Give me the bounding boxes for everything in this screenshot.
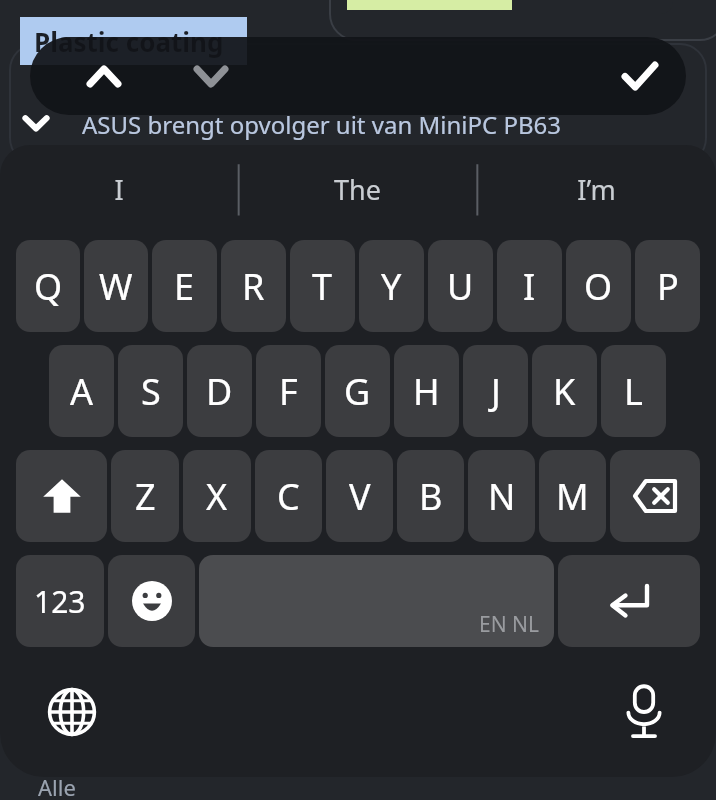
staticText: U [447,262,474,311]
staticText: N [488,472,516,521]
staticText: P [657,262,679,311]
button[interactable]: C [255,450,322,542]
button[interactable]: R [221,240,286,332]
button[interactable]: Space [199,555,554,647]
staticText: Y [381,262,402,311]
button[interactable]: Y [359,240,424,332]
button[interactable]: O [566,240,631,332]
button[interactable]: L [601,345,666,437]
staticText: Alle [38,772,76,800]
staticText: E [174,262,195,311]
staticText: I [114,171,124,208]
staticText: I [523,262,536,311]
button[interactable]: Shift [16,450,107,542]
button[interactable]: I’m [477,145,716,233]
button[interactable]: S [118,345,183,437]
staticText: W [99,262,133,311]
button[interactable]: T [290,240,355,332]
staticText: G [344,367,371,416]
button[interactable]: D [187,345,252,437]
button[interactable]: Next [185,50,237,102]
staticText: T [312,262,333,311]
button[interactable]: M [539,450,606,542]
staticText: 123 [34,581,86,622]
button[interactable]: G [325,345,390,437]
button[interactable]: B [397,450,464,542]
button[interactable]: 123 [16,555,104,647]
staticText: D [206,367,233,416]
button[interactable]: K [532,345,597,437]
button[interactable]: U [428,240,493,332]
staticText: ASUS brengt opvolger uit van MiniPC PB63 [82,108,561,141]
staticText: O [584,262,613,311]
button[interactable]: The [238,145,477,233]
button[interactable]: Done [613,49,667,103]
staticText: L [624,367,643,416]
button[interactable]: Q [16,240,80,332]
staticText: M [556,472,589,521]
button[interactable]: H [394,345,459,437]
button[interactable]: W [84,240,148,332]
button[interactable]: Previous [78,50,130,102]
staticText: R [242,262,265,311]
button[interactable]: Backspace [610,450,700,542]
staticText: I’m [577,171,616,208]
staticText: The [334,171,381,208]
button[interactable]: V [326,450,393,542]
button[interactable]: Switch language [36,676,108,748]
button[interactable]: Voice input [608,676,680,748]
staticText: K [553,367,576,416]
staticText: V [349,472,371,521]
button[interactable]: J [463,345,528,437]
staticText: H [413,367,440,416]
staticText: X [206,472,228,521]
staticText: C [277,472,300,521]
staticText: Z [135,472,156,521]
button[interactable]: X [183,450,251,542]
staticText: A [70,367,94,416]
button[interactable]: F [256,345,321,437]
button[interactable]: Z [111,450,179,542]
button[interactable]: I [0,145,238,233]
staticText: Q [34,262,63,311]
button[interactable]: E [152,240,217,332]
button[interactable]: Emoji [108,555,195,647]
button[interactable]: N [468,450,535,542]
button[interactable]: P [635,240,700,332]
staticText: EN NL [479,610,540,639]
staticText: B [419,472,443,521]
button[interactable]: I [497,240,562,332]
staticText: F [279,367,298,416]
staticText: S [141,367,161,416]
button[interactable]: Enter [558,555,700,647]
staticText: Plastic coating [34,24,224,59]
staticText: J [491,367,501,416]
button[interactable]: A [49,345,114,437]
